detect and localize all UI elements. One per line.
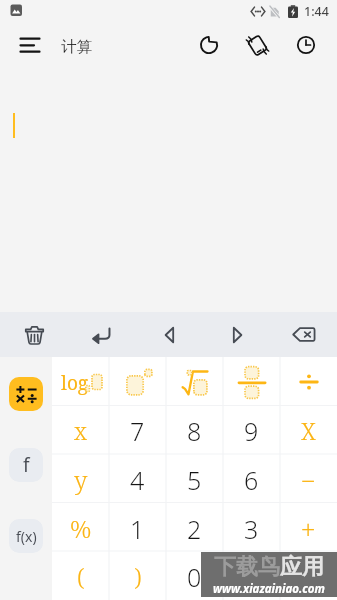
- staticText: ): [134, 560, 142, 593]
- button[interactable]: −: [280, 455, 337, 504]
- button[interactable]: X: [280, 406, 337, 455]
- staticText: 6: [244, 463, 259, 497]
- staticText: 计算: [61, 37, 92, 57]
- button[interactable]: .: [223, 553, 280, 600]
- button[interactable]: 6: [223, 455, 280, 504]
- button[interactable]: Move right: [203, 312, 270, 357]
- button[interactable]: 5: [166, 455, 223, 504]
- button[interactable]: f(x): [9, 519, 43, 553]
- button[interactable]: Shake: [236, 24, 278, 66]
- button[interactable]: 8: [166, 406, 223, 455]
- staticText: f(x): [16, 527, 37, 546]
- staticText: =: [301, 560, 316, 594]
- button[interactable]: power: [109, 357, 166, 406]
- staticText: (: [77, 560, 85, 593]
- button[interactable]: +: [280, 504, 337, 553]
- staticText: 应用: [280, 553, 324, 581]
- button[interactable]: fraction: [223, 357, 280, 406]
- button[interactable]: 3: [223, 504, 280, 553]
- staticText: 1:44: [304, 3, 329, 20]
- button[interactable]: 1: [109, 504, 166, 553]
- button[interactable]: History: [285, 24, 327, 66]
- button[interactable]: y: [52, 455, 109, 504]
- staticText: 7: [130, 414, 145, 448]
- button[interactable]: Backspace: [270, 312, 337, 357]
- button[interactable]: (: [52, 553, 109, 600]
- button[interactable]: 4: [109, 455, 166, 504]
- button[interactable]: square root: [166, 357, 223, 406]
- staticText: x: [74, 414, 87, 447]
- button[interactable]: log: [52, 357, 109, 406]
- staticText: +: [301, 512, 316, 546]
- staticText: −: [301, 463, 316, 497]
- staticText: log: [61, 370, 89, 396]
- button[interactable]: Clear: [0, 312, 68, 357]
- button[interactable]: Move left: [136, 312, 203, 357]
- button[interactable]: Theme: [188, 24, 230, 66]
- button[interactable]: divide: [280, 357, 337, 406]
- staticText: f: [23, 452, 30, 478]
- staticText: X: [301, 414, 316, 447]
- button[interactable]: Basic operators: [9, 377, 43, 411]
- button[interactable]: 9: [223, 406, 280, 455]
- button[interactable]: Menu: [8, 29, 44, 65]
- staticText: 4: [130, 463, 145, 497]
- button[interactable]: 2: [166, 504, 223, 553]
- staticText: 8: [187, 414, 202, 448]
- staticText: 1: [130, 512, 145, 546]
- staticText: 下载鸟: [214, 553, 280, 581]
- staticText: 5: [187, 463, 202, 497]
- staticText: 3: [244, 512, 259, 546]
- staticText: %: [70, 512, 92, 545]
- staticText: y: [74, 463, 88, 496]
- button[interactable]: 0: [166, 553, 223, 600]
- staticText: www.xiazainiao.com: [213, 581, 325, 597]
- button[interactable]: 7: [109, 406, 166, 455]
- staticText: 2: [187, 512, 202, 546]
- button[interactable]: %: [52, 504, 109, 553]
- staticText: 9: [244, 414, 259, 448]
- button[interactable]: ): [109, 553, 166, 600]
- staticText: .: [248, 560, 255, 594]
- button[interactable]: =: [280, 553, 337, 600]
- button[interactable]: Enter: [68, 312, 136, 357]
- button[interactable]: f: [9, 448, 43, 482]
- button[interactable]: x: [52, 406, 109, 455]
- staticText: 0: [187, 560, 202, 594]
